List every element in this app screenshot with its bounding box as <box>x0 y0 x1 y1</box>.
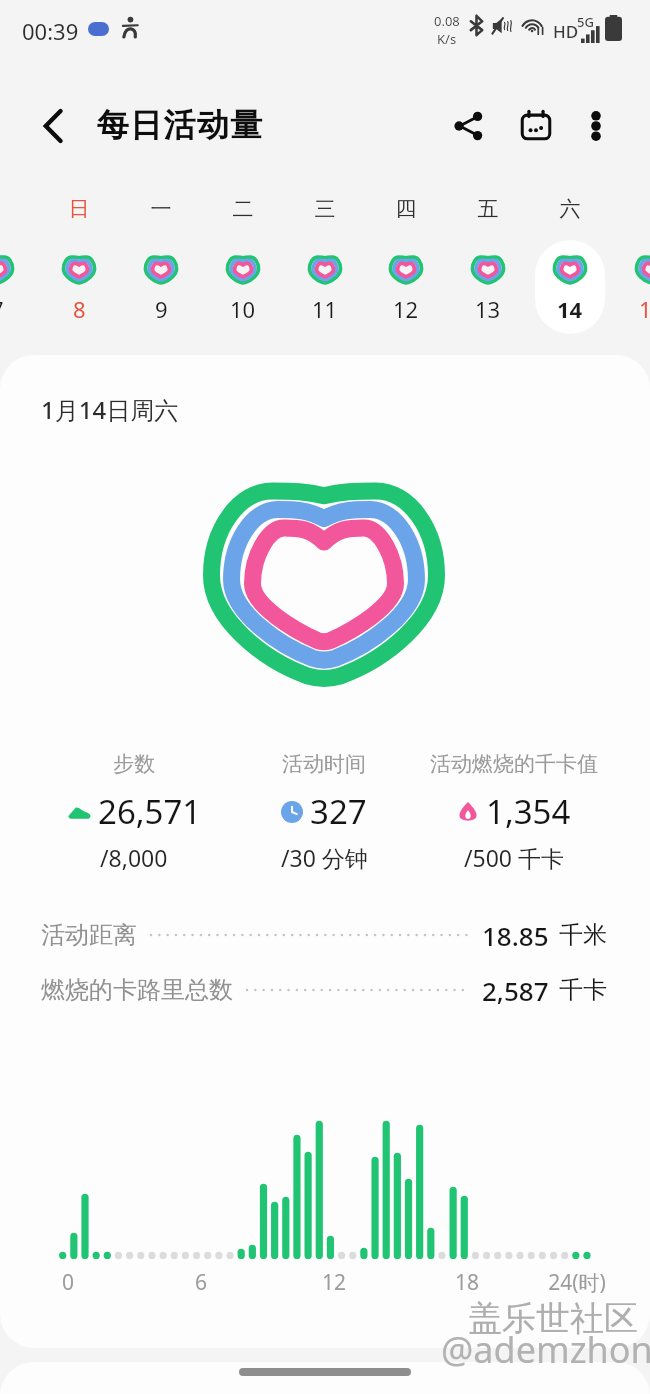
button[interactable]: 步数 <box>39 751 229 873</box>
staticText: 每日活动量 <box>96 105 263 145</box>
button[interactable]: 11 <box>290 240 360 334</box>
staticText: 0.08 <box>434 12 460 30</box>
staticText: 5G <box>577 13 594 31</box>
button[interactable]: 燃烧的卡路里总数 <box>41 970 607 1010</box>
button[interactable]: Back <box>27 100 79 152</box>
staticText: 2,587 <box>482 973 549 1008</box>
staticText: K/s <box>437 30 457 48</box>
staticText: 24(时) <box>537 1268 617 1297</box>
staticText: 活动燃烧的千卡值 <box>430 751 598 777</box>
staticText: 二 <box>213 196 273 222</box>
staticText: 11 <box>312 294 338 324</box>
staticText: 6 <box>161 1268 241 1297</box>
staticText: 13 <box>475 294 501 324</box>
staticText: 327 <box>310 789 367 834</box>
button[interactable]: 活动燃烧的千卡值 <box>419 751 609 873</box>
staticText: 千卡 <box>559 975 607 1005</box>
button[interactable]: 13 <box>453 240 523 334</box>
staticText: 12 <box>294 1268 374 1297</box>
staticText: /30 分钟 <box>281 842 368 873</box>
staticText: 一 <box>131 196 191 222</box>
staticText: 18.85 <box>482 918 549 953</box>
staticText: 四 <box>376 196 436 222</box>
staticText: 7 <box>0 294 4 324</box>
button[interactable]: 9 <box>126 240 196 334</box>
button[interactable]: 14 <box>535 240 605 334</box>
button[interactable]: 活动距离 <box>41 915 607 955</box>
button[interactable]: Share <box>442 100 494 152</box>
staticText: 盖乐世社区 <box>468 1297 638 1340</box>
button[interactable]: 15 <box>617 240 650 334</box>
staticText: 1月14日周六 <box>41 393 179 426</box>
button[interactable]: 活动时间 <box>229 751 419 873</box>
staticText: 9 <box>155 294 168 324</box>
staticText: 1,354 <box>486 789 571 834</box>
staticText: 14 <box>557 294 583 324</box>
staticText: /500 千卡 <box>464 842 565 873</box>
staticText: 三 <box>295 196 355 222</box>
staticText: @ademzhong <box>441 1325 650 1374</box>
staticText: 15 <box>639 294 650 324</box>
staticText: 活动距离 <box>41 920 137 950</box>
button[interactable]: Calendar <box>510 100 562 152</box>
staticText: 12 <box>393 294 419 324</box>
staticText: HD <box>553 20 579 43</box>
staticText: 00:39 <box>22 16 79 46</box>
staticText: 26,571 <box>98 789 202 834</box>
staticText: /8,000 <box>100 842 168 873</box>
button[interactable]: 7 <box>0 240 32 334</box>
staticText: 步数 <box>113 751 155 777</box>
staticText: 千米 <box>559 920 607 950</box>
staticText: 六 <box>540 196 600 222</box>
button[interactable]: 10 <box>208 240 278 334</box>
staticText: 日 <box>49 196 109 222</box>
staticText: 8 <box>73 294 86 324</box>
staticText: 活动时间 <box>282 751 366 777</box>
staticText: 五 <box>458 196 518 222</box>
button[interactable]: 12 <box>371 240 441 334</box>
staticText: 10 <box>230 294 256 324</box>
button[interactable]: More options <box>570 100 622 152</box>
staticText: 0 <box>28 1268 108 1297</box>
button[interactable]: 8 <box>44 240 114 334</box>
staticText: 18 <box>427 1268 507 1297</box>
staticText: 燃烧的卡路里总数 <box>41 975 233 1005</box>
